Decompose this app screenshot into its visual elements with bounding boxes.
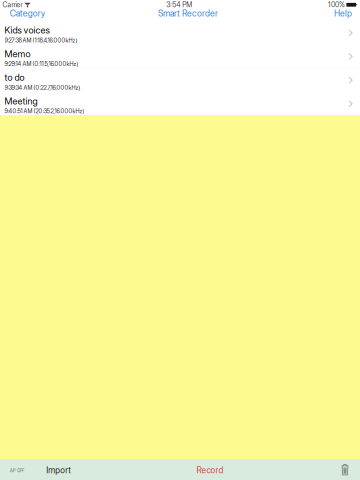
button[interactable]: Help bbox=[330, 7, 356, 20]
staticText: Help bbox=[334, 8, 352, 19]
staticText: Smart Recorder bbox=[158, 8, 218, 19]
staticText: Kids voices bbox=[4, 25, 49, 36]
button[interactable]: Kids voices bbox=[0, 21, 360, 44]
staticText: AP OFF bbox=[10, 468, 24, 473]
button[interactable]: Import bbox=[38, 460, 80, 480]
staticText: 9:29:14 AM (0:11.5,16.000kHz) bbox=[4, 60, 78, 67]
staticText: Import bbox=[46, 465, 71, 475]
staticText: Carrier bbox=[3, 1, 23, 9]
button[interactable]: Record bbox=[187, 460, 233, 480]
staticText: Meeting bbox=[4, 95, 37, 107]
staticText: 9:39:34 AM (0:22.7,16.000kHz) bbox=[4, 84, 80, 91]
staticText: Record bbox=[196, 465, 223, 475]
button[interactable]: AP OFF bbox=[3, 461, 31, 480]
staticText: 9:27:38 AM (1:18.4,16.000kHz) bbox=[4, 37, 77, 44]
button[interactable]: to do bbox=[0, 68, 360, 91]
staticText: to do bbox=[4, 72, 24, 83]
staticText: 100% bbox=[328, 1, 345, 9]
staticText: Memo bbox=[4, 48, 30, 59]
button[interactable]: Category bbox=[5, 7, 49, 20]
staticText: 3:54 PM bbox=[166, 1, 192, 9]
staticText: 9:40:51 AM (20:35.2,16.000kHz) bbox=[4, 108, 84, 115]
button[interactable]: Delete recording bbox=[334, 460, 356, 479]
staticText: Category bbox=[10, 8, 45, 19]
button[interactable]: Memo bbox=[0, 44, 360, 68]
button[interactable]: Meeting bbox=[0, 91, 360, 115]
